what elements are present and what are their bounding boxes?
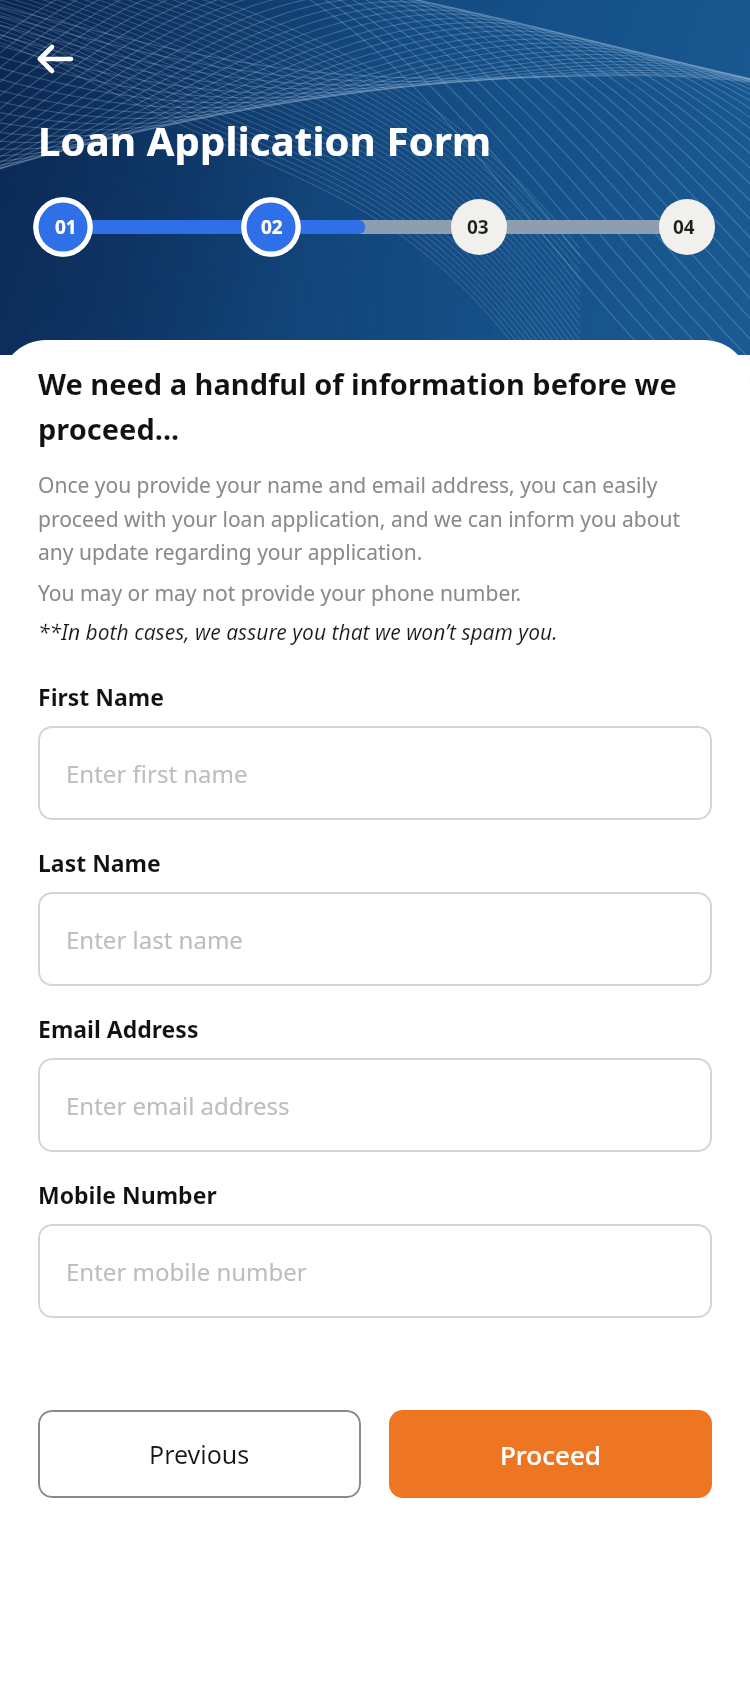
staticText: We need a handful of information before … <box>38 364 712 449</box>
staticText: First Name <box>38 681 164 712</box>
button[interactable]: 01 <box>38 196 94 258</box>
button[interactable]: Enter email address <box>38 1058 712 1152</box>
staticText: Enter mobile number <box>66 1255 307 1288</box>
button[interactable]: 02 <box>244 196 300 258</box>
staticText: You may or may not provide your phone nu… <box>38 579 522 608</box>
button[interactable]: 03 <box>450 196 506 258</box>
staticText: Enter email address <box>66 1089 290 1122</box>
button[interactable]: Enter last name <box>38 892 712 986</box>
button[interactable]: Proceed <box>389 1410 712 1498</box>
button[interactable]: Previous <box>38 1410 361 1498</box>
button[interactable]: Enter first name <box>38 726 712 820</box>
staticText: Enter last name <box>66 923 243 956</box>
staticText: Loan Application Form <box>38 113 492 167</box>
staticText: 02 <box>261 214 283 240</box>
staticText: 01 <box>55 214 77 240</box>
staticText: Previous <box>149 1437 250 1471</box>
staticText: Enter first name <box>66 757 248 790</box>
staticText: Email Address <box>38 1013 199 1044</box>
staticText: **In both cases, we assure you that we w… <box>38 618 558 647</box>
button[interactable]: 04 <box>656 196 712 258</box>
staticText: Once you provide your name and email add… <box>38 471 712 566</box>
staticText: Proceed <box>500 1437 601 1472</box>
staticText: 04 <box>673 214 695 240</box>
staticText: Last Name <box>38 847 161 878</box>
staticText: Mobile Number <box>38 1179 217 1210</box>
staticText: 03 <box>467 214 489 240</box>
button[interactable]: Enter mobile number <box>38 1224 712 1318</box>
button[interactable]: Back <box>24 28 86 90</box>
